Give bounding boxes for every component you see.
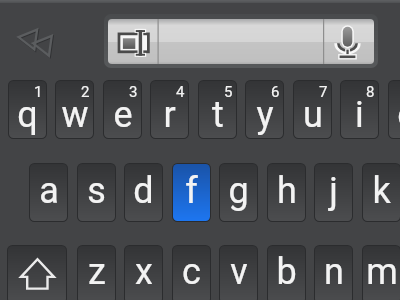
button[interactable]: c (172, 245, 211, 300)
staticText: o (397, 94, 400, 136)
staticText: 1 (34, 83, 43, 101)
staticText: 4 (176, 83, 185, 101)
button[interactable]: i (340, 80, 379, 139)
button[interactable]: Switch input method (104, 14, 378, 68)
button[interactable]: o (388, 80, 400, 139)
staticText: g (228, 170, 249, 212)
button[interactable]: h (267, 163, 306, 222)
staticText: d (133, 170, 154, 212)
staticText: 2 (81, 83, 90, 101)
button[interactable]: t (198, 80, 237, 139)
staticText: i (355, 94, 364, 136)
staticText: u (303, 94, 323, 136)
button[interactable]: q (8, 80, 47, 139)
staticText: j (329, 170, 338, 212)
staticText: h (277, 170, 297, 212)
button[interactable]: j (314, 163, 353, 222)
button[interactable]: w (55, 80, 94, 139)
button[interactable]: s (77, 163, 116, 222)
button[interactable]: k (362, 163, 400, 222)
button[interactable]: a (29, 163, 68, 222)
button[interactable]: Voice input (332, 22, 368, 62)
staticText: r (163, 94, 176, 136)
staticText: 5 (224, 83, 233, 101)
button[interactable]: z (77, 245, 116, 300)
button[interactable]: Hide keyboard (4, 14, 60, 66)
staticText: z (88, 251, 106, 293)
staticText: y (256, 94, 274, 136)
button[interactable]: g (219, 163, 258, 222)
staticText: a (39, 170, 59, 212)
staticText: k (372, 170, 391, 212)
button[interactable]: r (150, 80, 189, 139)
staticText: w (61, 94, 89, 136)
button[interactable]: e (103, 80, 142, 139)
staticText: c (182, 251, 201, 293)
staticText: s (87, 170, 106, 212)
staticText: x (135, 251, 153, 293)
staticText: e (113, 94, 133, 136)
button[interactable]: y (245, 80, 284, 139)
staticText: q (17, 94, 38, 136)
button[interactable]: m (362, 245, 400, 300)
button[interactable]: n (314, 245, 353, 300)
button[interactable]: d (124, 163, 163, 222)
staticText: f (185, 170, 198, 212)
staticText: v (230, 251, 248, 293)
staticText: m (366, 251, 398, 293)
button[interactable]: Switch input method (114, 24, 156, 60)
button[interactable]: x (124, 245, 163, 300)
button[interactable]: v (219, 245, 258, 300)
button[interactable]: f (172, 163, 211, 222)
staticText: t (212, 94, 224, 136)
button[interactable]: Shift (7, 245, 67, 300)
button[interactable]: b (267, 245, 306, 300)
staticText: 6 (271, 83, 280, 101)
button[interactable]: u (293, 80, 332, 139)
staticText: b (276, 251, 297, 293)
staticText: n (324, 251, 344, 293)
staticText: 7 (319, 83, 328, 101)
staticText: 8 (366, 83, 375, 101)
staticText: 3 (129, 83, 138, 101)
